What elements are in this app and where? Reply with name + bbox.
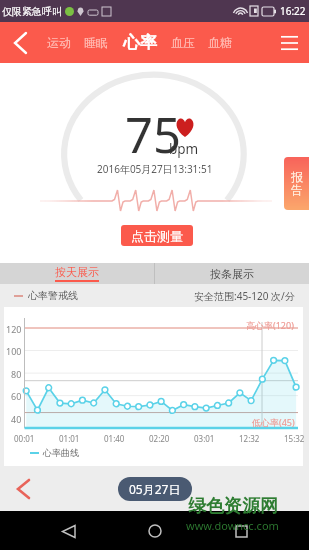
staticText: 15:32: [284, 433, 305, 444]
staticText: 心率警戒线: [28, 289, 78, 302]
button[interactable]: Home: [136, 512, 174, 550]
staticText: 低心率(45): [252, 416, 295, 428]
staticText: 2016年05月27日13:31:51: [97, 162, 213, 176]
staticText: 60: [11, 390, 22, 402]
staticText: 高心率(120): [246, 319, 294, 331]
button[interactable]: 05月27日: [118, 477, 192, 501]
staticText: 01:01: [59, 433, 80, 444]
staticText: 75: [125, 101, 182, 168]
staticText: 点击测量: [131, 228, 183, 244]
staticText: bpm: [169, 140, 199, 158]
staticText: 按条展示: [210, 267, 254, 281]
button[interactable]: 按天展示: [0, 263, 154, 284]
staticText: 报 告: [291, 169, 303, 198]
button[interactable]: 报 告: [284, 157, 309, 210]
staticText: 12:32: [239, 433, 260, 444]
staticText: 血糖: [208, 35, 232, 50]
staticText: 运动: [47, 35, 71, 50]
button[interactable]: Back: [49, 512, 87, 550]
button[interactable]: 运动: [45, 22, 73, 63]
staticText: 05月27日: [129, 481, 181, 497]
button[interactable]: Menu: [269, 23, 309, 63]
staticText: 安全范围:45-120 次/分: [194, 289, 295, 303]
staticText: 16:22: [280, 4, 306, 18]
button[interactable]: Back: [0, 23, 40, 63]
staticText: 120: [6, 323, 22, 335]
staticText: 80: [11, 368, 22, 380]
staticText: 心率: [123, 32, 157, 53]
staticText: 绿色资源网: [188, 495, 278, 518]
staticText: 01:40: [104, 433, 125, 444]
button[interactable]: 睡眠: [82, 22, 110, 63]
staticText: 40: [11, 413, 22, 425]
button[interactable]: 血压: [169, 22, 197, 63]
staticText: 02:20: [149, 433, 170, 444]
button[interactable]: Previous day: [8, 474, 38, 504]
staticText: www.downcc.com: [186, 518, 279, 533]
button[interactable]: 按条展示: [155, 263, 309, 284]
staticText: 仅限紧急呼叫: [2, 5, 62, 18]
button[interactable]: Recent apps: [222, 512, 260, 550]
button[interactable]: 血糖: [206, 22, 234, 63]
staticText: 心率曲线: [43, 447, 79, 458]
staticText: 睡眠: [84, 35, 108, 50]
staticText: 血压: [171, 35, 195, 50]
staticText: 100: [6, 345, 22, 357]
staticText: 按天展示: [55, 265, 99, 279]
button[interactable]: 点击测量: [121, 225, 193, 246]
staticText: 00:01: [14, 433, 35, 444]
staticText: 03:01: [194, 433, 215, 444]
button[interactable]: 心率: [121, 22, 159, 63]
